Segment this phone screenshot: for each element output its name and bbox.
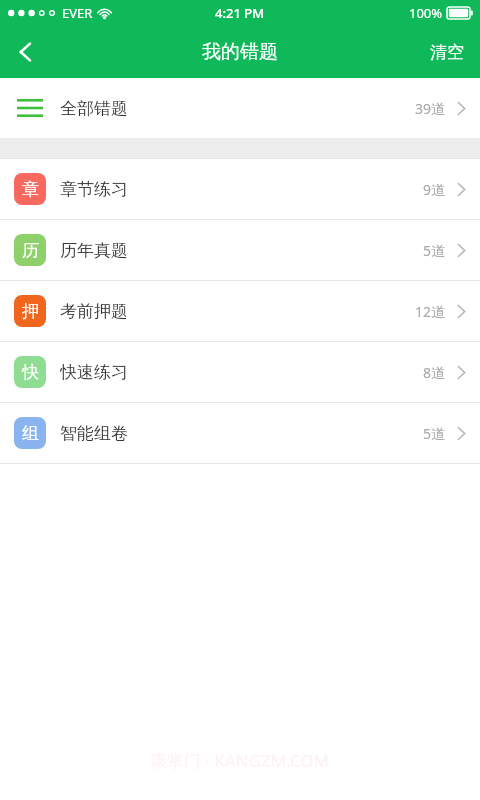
staticText: 快速练习 (60, 362, 128, 383)
button[interactable]: 全部错题 (0, 78, 480, 138)
staticText: 智能组卷 (60, 423, 128, 444)
staticText: 全部错题 (60, 98, 128, 119)
staticText: 快 (22, 362, 39, 383)
button[interactable]: 历 (0, 220, 480, 280)
staticText: 清空 (430, 42, 464, 63)
button[interactable]: 清空 (414, 26, 480, 78)
staticText: 康掌门 · KANGZM.COM (150, 749, 330, 772)
staticText: 8道 (423, 363, 446, 382)
button[interactable]: 押 (0, 281, 480, 341)
staticText: 5道 (423, 424, 446, 443)
staticText: 我的错题 (202, 40, 278, 64)
staticText: EVER (62, 4, 93, 22)
button[interactable]: Back (0, 26, 52, 78)
staticText: 39道 (415, 99, 446, 118)
staticText: 组 (22, 423, 39, 444)
button[interactable]: 组 (0, 403, 480, 463)
staticText: 历年真题 (60, 240, 128, 261)
staticText: 5道 (423, 241, 446, 260)
staticText: 12道 (415, 302, 446, 321)
staticText: 100% (409, 4, 443, 22)
staticText: 历 (22, 240, 39, 261)
button[interactable]: 章 (0, 159, 480, 219)
staticText: 4:21 PM (215, 4, 265, 22)
staticText: 章节练习 (60, 179, 128, 200)
staticText: 9道 (423, 180, 446, 199)
staticText: 押 (22, 301, 39, 322)
staticText: 考前押题 (60, 301, 128, 322)
staticText: 章 (22, 179, 39, 200)
button[interactable]: 快 (0, 342, 480, 402)
